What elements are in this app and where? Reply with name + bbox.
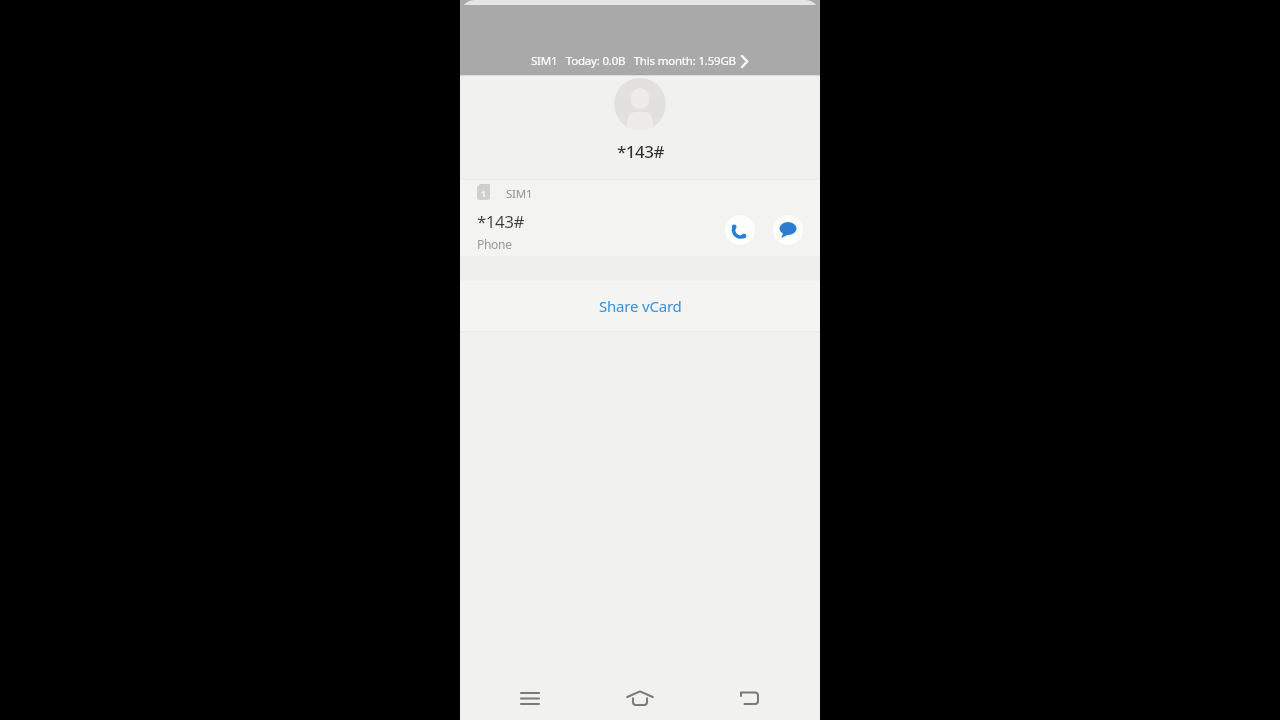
staticText: *143# [617,140,664,163]
staticText: Phone [477,236,512,252]
button[interactable] [773,215,803,245]
button[interactable]: Share vCard [460,281,820,331]
button[interactable]: 1 [460,180,820,256]
button[interactable]: SIM1 Today: 0.0B This month: 1.59GB [460,52,820,70]
button[interactable] [736,684,764,712]
button[interactable] [725,215,755,245]
staticText: 1 [481,187,487,199]
staticText: SIM1 [506,186,533,202]
button[interactable] [516,684,544,712]
staticText: Share vCard [599,296,682,316]
button[interactable] [626,684,654,712]
staticText: *143# [477,210,525,233]
staticText: SIM1 Today: 0.0B This month: 1.59GB [531,53,736,69]
